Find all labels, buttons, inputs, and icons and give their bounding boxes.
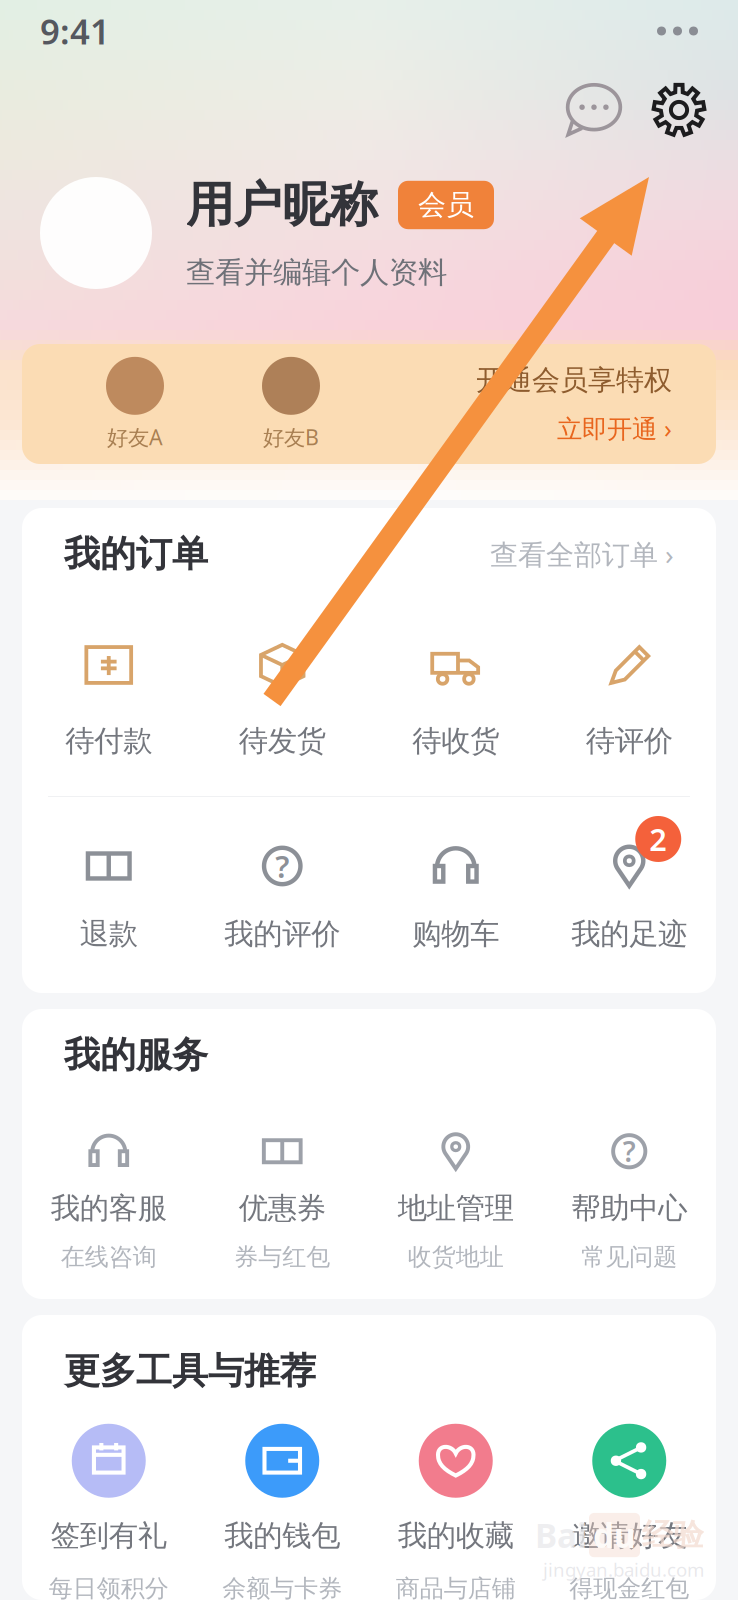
staticText: 我的钱包 [224,1518,340,1554]
button[interactable]: 待评价 [542,600,716,796]
staticText: 会员 [418,188,474,222]
staticText: 券与红包 [234,1242,330,1272]
staticText: 邀请好友 [571,1518,687,1554]
staticText: 帮助中心 [571,1190,687,1226]
staticText: 退款 [80,916,138,952]
button[interactable]: 签到有礼 [22,1427,195,1600]
staticText: 我的收藏 [398,1518,514,1554]
staticText: 更多工具与推荐 [64,1349,316,1393]
staticText: 待付款 [65,723,152,759]
staticText: 常见问题 [581,1242,677,1272]
staticText: 签到有礼 [51,1518,167,1554]
staticText: 每日领积分 [49,1574,169,1600]
button[interactable]: Settings [644,75,714,145]
button[interactable]: 查看全部订单 › [490,535,674,573]
button[interactable]: 好友A [0,344,738,464]
button[interactable]: ? [195,797,369,993]
button[interactable]: 邀请好友 [542,1427,716,1600]
staticText: 地址管理 [398,1190,514,1226]
staticText: 得现金红包 [569,1574,689,1600]
button[interactable]: 待发货 [195,600,369,796]
staticText: ? [623,1133,636,1170]
staticText: Bai [535,1513,587,1557]
staticText: 开通会员享特权 [476,363,672,397]
button[interactable]: 退款 [22,797,195,993]
staticText: 待发货 [239,723,326,759]
staticText: 我的订单 [64,532,208,576]
button[interactable]: 用户昵称 [0,158,738,308]
staticText: 收货地址 [408,1242,504,1272]
staticText: 用户昵称 [186,175,378,234]
staticText: ? [275,846,289,886]
staticText: 好友B [263,423,319,451]
staticText: 待收货 [412,723,499,759]
staticText: 2 [649,819,667,859]
staticText: 我的服务 [64,1033,208,1077]
staticText: du [593,1513,636,1557]
staticText: 在线咨询 [61,1242,157,1272]
staticText: 待评价 [586,723,673,759]
staticText: 余额与卡券 [222,1574,342,1600]
staticText: 我的足迹 [571,916,687,952]
staticText: 经验 [642,1516,704,1554]
button[interactable]: 地址管理 [369,1101,542,1299]
staticText: jingyan.baidu.com [543,1557,704,1582]
button[interactable]: 我的钱包 [195,1427,369,1600]
button[interactable]: 优惠券 [195,1101,369,1299]
button[interactable]: 2 [542,797,716,993]
staticText: 立即开通 › [557,411,672,445]
button[interactable]: 我的收藏 [369,1427,542,1600]
button[interactable]: 待收货 [369,600,542,796]
staticText: 购物车 [412,916,499,952]
button[interactable]: 待付款 [22,600,195,796]
staticText: 查看并编辑个人资料 [186,254,447,290]
staticText: 优惠券 [239,1190,326,1226]
staticText: 好友A [107,423,163,451]
button[interactable]: Messages [558,74,630,146]
staticText: 我的评价 [224,916,340,952]
staticText: 我的客服 [51,1190,167,1226]
staticText: 9:41 [40,8,110,54]
staticText: 商品与店铺 [396,1574,516,1600]
button[interactable]: ? [542,1101,716,1299]
button[interactable]: 我的客服 [22,1101,195,1299]
staticText: 查看全部订单 › [490,535,674,573]
button[interactable]: 购物车 [369,797,542,993]
